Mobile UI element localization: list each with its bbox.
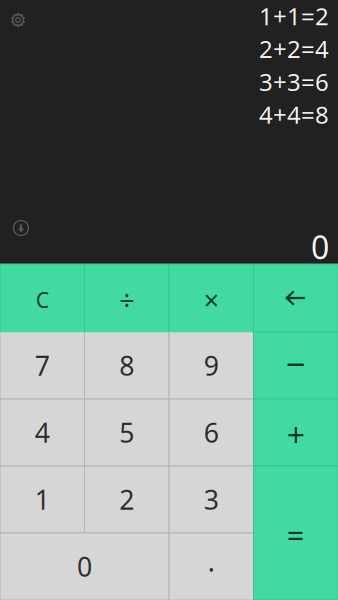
staticText: 3: [204, 482, 219, 517]
button[interactable]: 2: [84, 466, 169, 533]
staticText: 1+1=2: [259, 0, 329, 32]
staticText: .: [208, 544, 215, 579]
staticText: C: [36, 285, 49, 314]
button[interactable]: 4: [0, 399, 84, 466]
staticText: ÷: [119, 282, 134, 317]
staticText: 8: [119, 348, 134, 383]
staticText: 5: [119, 415, 134, 450]
button[interactable]: Settings: [4, 6, 32, 34]
button[interactable]: 8: [84, 332, 169, 399]
button[interactable]: −: [253, 332, 338, 399]
staticText: 4: [35, 415, 50, 450]
staticText: 0: [77, 549, 92, 584]
button[interactable]: .: [169, 533, 253, 600]
staticText: 0: [311, 225, 329, 268]
button[interactable]: 6: [169, 399, 253, 466]
staticText: 6: [204, 415, 219, 450]
button[interactable]: =: [253, 466, 338, 600]
button[interactable]: C: [0, 264, 84, 332]
button[interactable]: 3: [169, 466, 253, 533]
staticText: 7: [35, 348, 50, 383]
button[interactable]: 9: [169, 332, 253, 399]
staticText: 4+4=8: [259, 99, 329, 130]
button[interactable]: ÷: [84, 264, 169, 332]
button[interactable]: Delete: [253, 264, 338, 332]
button[interactable]: +: [253, 399, 338, 466]
button[interactable]: 0: [0, 533, 169, 600]
staticText: 2+2=4: [259, 33, 329, 65]
staticText: 9: [204, 348, 219, 383]
button[interactable]: History: [7, 214, 35, 242]
button[interactable]: 7: [0, 332, 84, 399]
staticText: 3+3=6: [259, 66, 329, 98]
button[interactable]: ×: [169, 264, 253, 332]
staticText: ×: [204, 282, 219, 317]
staticText: +: [287, 413, 305, 456]
staticText: 1: [35, 482, 50, 517]
staticText: 2: [119, 482, 134, 517]
staticText: =: [287, 515, 305, 555]
staticText: −: [286, 340, 306, 386]
button[interactable]: 1: [0, 466, 84, 533]
button[interactable]: 5: [84, 399, 169, 466]
